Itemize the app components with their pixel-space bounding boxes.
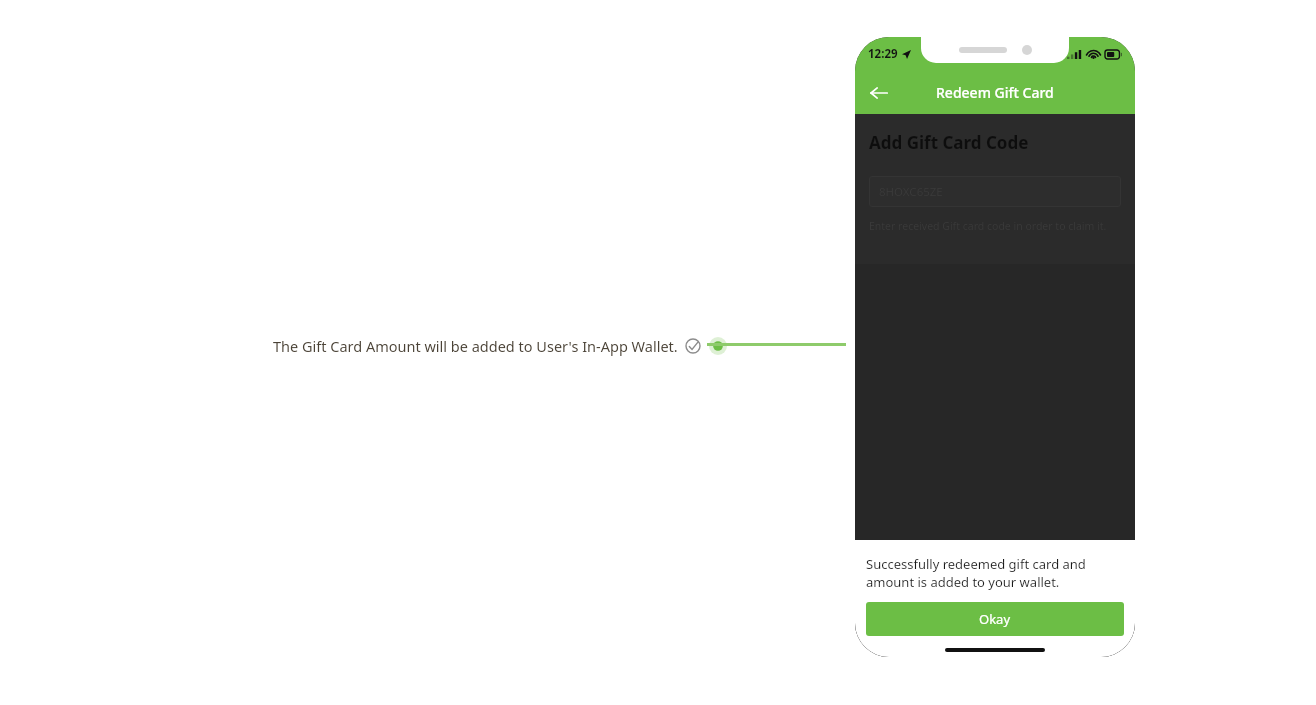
staticText: Enter received Gift card code in order t… <box>869 219 1107 233</box>
other: Verified <box>685 338 701 354</box>
staticText: 8HOXC65ZE <box>879 184 943 200</box>
staticText: Redeem Gift Card <box>936 83 1054 102</box>
staticText: Successfully redeemed gift card and amou… <box>866 555 1124 591</box>
staticText: Okay <box>979 610 1011 628</box>
staticText: 12:29 <box>868 46 898 62</box>
staticText: Add Gift Card Code <box>869 131 1029 154</box>
staticText: The Gift Card Amount will be added to Us… <box>273 336 678 356</box>
button[interactable]: Back <box>855 71 903 114</box>
button[interactable]: Okay <box>866 602 1124 636</box>
